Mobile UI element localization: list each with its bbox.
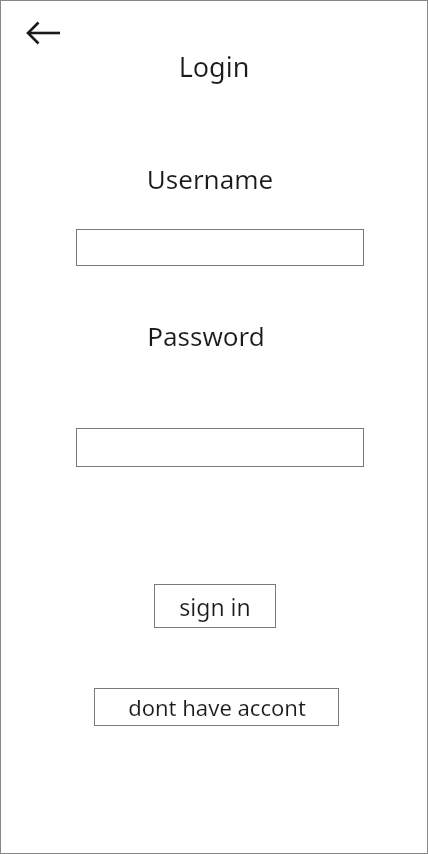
button[interactable]: Username field	[76, 229, 364, 266]
staticText: sign in	[179, 591, 251, 622]
staticText: Login	[0, 48, 428, 854]
button[interactable]: sign in	[154, 584, 276, 628]
staticText: dont have accont	[128, 692, 306, 722]
staticText: Password	[0, 318, 420, 854]
button[interactable]: Password field	[76, 428, 364, 467]
staticText: Username	[0, 161, 424, 854]
button[interactable]: Back	[22, 18, 68, 48]
button[interactable]: dont have accont	[94, 688, 339, 726]
